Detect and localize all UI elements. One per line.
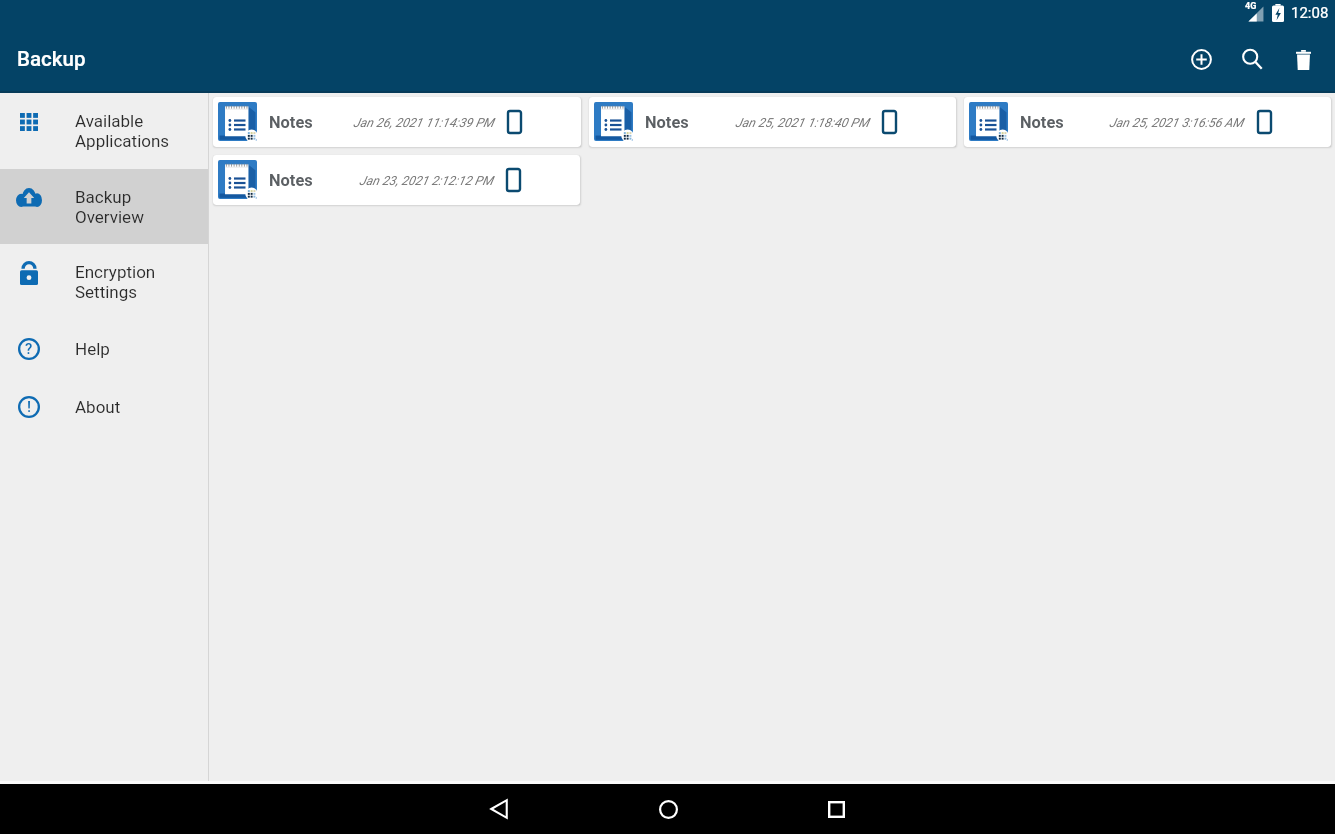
- button[interactable]: Delete: [1278, 28, 1329, 91]
- button[interactable]: Back: [415, 784, 583, 834]
- staticText: Notes: [645, 113, 689, 132]
- staticText: Notes: [269, 171, 313, 190]
- staticText: Settings: [75, 282, 138, 302]
- staticText: Jan 25, 2021 1:18:40 PM: [735, 115, 869, 130]
- staticText: 4G: [1245, 1, 1257, 12]
- button[interactable]: Home: [584, 784, 752, 834]
- staticText: Jan 25, 2021 3:16:56 AM: [1109, 115, 1244, 130]
- button[interactable]: Available: [0, 93, 209, 169]
- staticText: 12:08: [1291, 4, 1329, 22]
- button[interactable]: !: [0, 378, 209, 436]
- staticText: Applications: [75, 131, 170, 151]
- staticText: Notes: [1020, 113, 1064, 132]
- staticText: Jan 23, 2021 2:12:12 PM: [359, 173, 493, 188]
- staticText: About: [75, 397, 121, 417]
- button[interactable]: Notes: [964, 97, 1331, 147]
- button[interactable]: Recents: [752, 784, 920, 834]
- staticText: Overview: [75, 207, 144, 227]
- staticText: Help: [75, 339, 110, 359]
- button[interactable]: Encryption: [0, 244, 209, 320]
- button[interactable]: Backup: [0, 169, 209, 244]
- staticText: Jan 26, 2021 11:14:39 PM: [353, 115, 494, 130]
- staticText: Backup: [17, 47, 86, 71]
- button[interactable]: Notes: [213, 97, 581, 147]
- staticText: !: [27, 398, 32, 416]
- staticText: Available: [75, 111, 144, 131]
- button[interactable]: Search: [1227, 28, 1278, 91]
- staticText: ?: [25, 340, 33, 358]
- button[interactable]: Add: [1176, 28, 1227, 91]
- button[interactable]: ?: [0, 320, 209, 378]
- button[interactable]: Notes: [589, 97, 956, 147]
- staticText: Encryption: [75, 262, 156, 282]
- staticText: Backup: [75, 187, 132, 207]
- staticText: Notes: [269, 113, 313, 132]
- button[interactable]: Notes: [213, 155, 580, 205]
